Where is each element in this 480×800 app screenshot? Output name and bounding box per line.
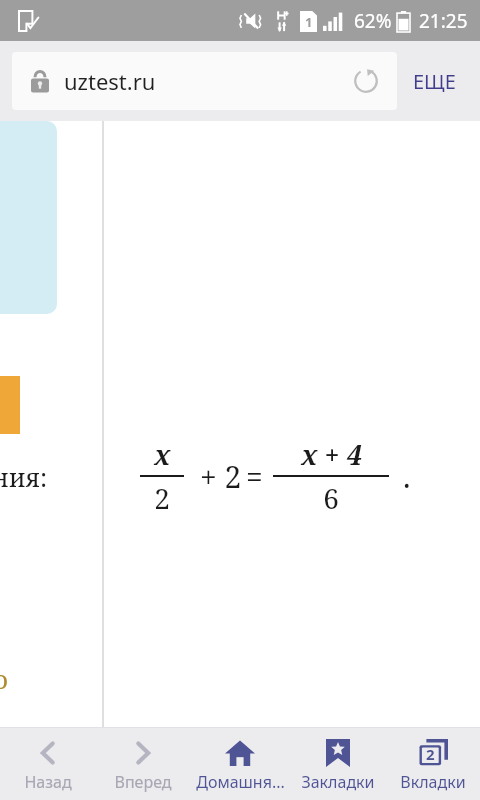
button[interactable]: uztest.ru: [12, 52, 397, 110]
staticText: Назад: [24, 771, 72, 793]
staticText: 6: [323, 479, 339, 517]
staticText: + 2: [200, 456, 242, 497]
staticText: Домашня...: [196, 771, 285, 793]
button[interactable]: ЕЩЕ: [397, 52, 472, 110]
staticText: .: [403, 456, 411, 497]
staticText: ЕЩЕ: [413, 68, 456, 95]
staticText: Вкладки: [400, 771, 466, 793]
staticText: 2: [426, 744, 435, 764]
button[interactable]: Reload: [349, 64, 383, 98]
button[interactable]: Назад: [0, 728, 95, 800]
button[interactable]: Домашня...: [190, 728, 290, 800]
staticText: =: [246, 456, 263, 497]
staticText: 21:25: [419, 8, 468, 34]
staticText: x + 4: [301, 436, 362, 473]
staticText: Вперед: [114, 771, 172, 793]
staticText: 62%: [354, 8, 392, 34]
staticText: Закладки: [301, 771, 375, 793]
button[interactable]: Вперед: [95, 728, 190, 800]
staticText: x: [154, 436, 171, 473]
staticText: 1: [305, 13, 313, 31]
staticText: о: [0, 661, 9, 696]
staticText: uztest.ru: [64, 66, 349, 96]
button[interactable]: Закладки: [290, 728, 385, 800]
button[interactable]: 2: [385, 728, 480, 800]
staticText: ния:: [0, 460, 48, 494]
staticText: 2: [154, 479, 170, 517]
